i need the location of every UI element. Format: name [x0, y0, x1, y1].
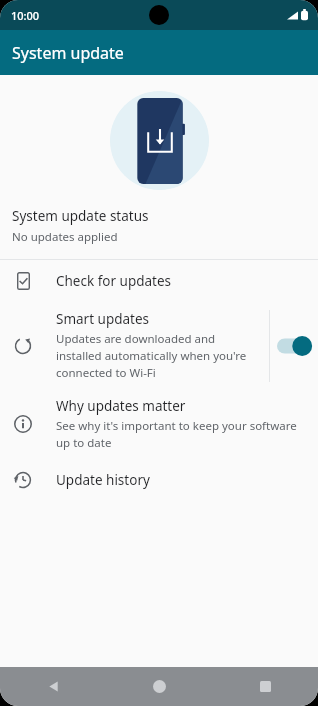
button[interactable]: Recent apps — [212, 667, 318, 706]
staticText: Smart updates — [56, 310, 150, 328]
staticText: Why updates matter — [56, 397, 186, 415]
staticText: System update — [12, 42, 124, 64]
button[interactable]: Home — [106, 667, 212, 706]
staticText: Update history — [56, 471, 150, 489]
staticText: Updates are downloaded and installed aut… — [56, 331, 261, 381]
staticText: No updates applied — [12, 229, 118, 245]
button[interactable]: Update history — [0, 459, 318, 501]
button[interactable]: Smart updates toggle — [270, 310, 318, 382]
staticText: System update status — [12, 207, 149, 225]
button[interactable]: Smart updates — [0, 302, 269, 389]
staticText: 10:00 — [11, 8, 40, 23]
button[interactable]: Check for updates — [0, 260, 318, 302]
staticText: Check for updates — [56, 272, 172, 290]
button[interactable]: Why updates matter — [0, 389, 318, 459]
button[interactable]: Back — [0, 667, 106, 706]
staticText: See why it's important to keep your soft… — [56, 418, 306, 451]
